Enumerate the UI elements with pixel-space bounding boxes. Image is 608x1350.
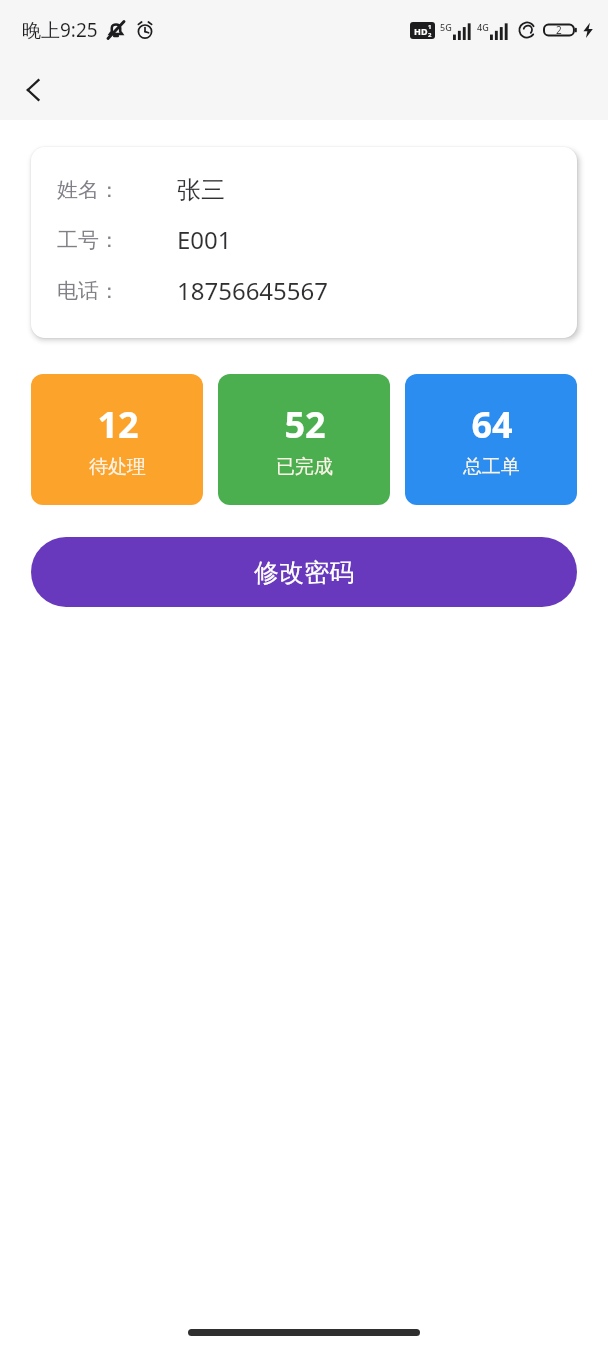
staticText: 总工单 <box>463 455 520 479</box>
staticText: 已完成 <box>276 455 333 479</box>
staticText: 18756645567 <box>177 274 329 307</box>
button[interactable]: 12 <box>31 374 203 505</box>
staticText: 4G <box>477 21 489 33</box>
staticText: 64 <box>471 400 513 449</box>
button[interactable]: 52 <box>218 374 390 505</box>
staticText: 5G <box>440 21 452 33</box>
button[interactable]: 64 <box>405 374 577 505</box>
staticText: 姓名： <box>57 177 120 203</box>
staticText: 修改密码 <box>254 557 354 588</box>
button[interactable]: Back <box>8 64 60 116</box>
staticText: 电话： <box>57 278 120 304</box>
staticText: 12 <box>97 400 139 449</box>
staticText: 张三 <box>177 175 225 205</box>
staticText: 2 <box>428 31 432 39</box>
staticText: 工号： <box>57 227 120 253</box>
staticText: 1 <box>428 23 432 31</box>
staticText: 2 <box>556 23 562 37</box>
staticText: E001 <box>177 223 232 256</box>
staticText: 52 <box>284 400 326 449</box>
button[interactable]: 修改密码 <box>31 537 577 607</box>
staticText: 晚上9:25 <box>22 17 98 43</box>
staticText: HD <box>414 25 428 37</box>
staticText: 待处理 <box>89 455 146 479</box>
